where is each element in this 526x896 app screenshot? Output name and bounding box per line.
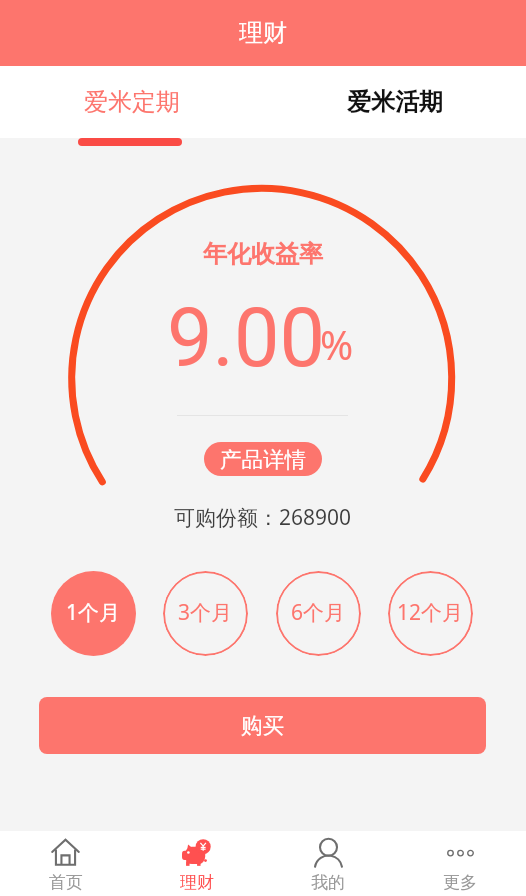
staticText: 理财 — [180, 872, 214, 893]
staticText: 6个月 — [291, 598, 346, 627]
staticText: 购买 — [241, 712, 284, 739]
staticText: 可购份额：268900 — [174, 503, 352, 532]
button[interactable]: 爱米活期 — [263, 66, 526, 138]
button[interactable]: 购买 — [39, 697, 486, 754]
button[interactable]: 我的 — [262, 831, 394, 896]
staticText: 3个月 — [178, 598, 233, 627]
staticText: 1个月 — [66, 598, 121, 627]
button[interactable]: 1个月 — [51, 571, 136, 656]
staticText: 9.00 — [167, 291, 325, 386]
staticText: 爱米定期 — [84, 87, 180, 117]
button[interactable]: 爱米定期 — [0, 66, 263, 138]
staticText: 12个月 — [397, 598, 464, 627]
button[interactable]: 首页 — [0, 831, 131, 896]
staticText: 更多 — [443, 872, 477, 893]
staticText: 产品详情 — [220, 446, 306, 473]
staticText: % — [320, 317, 354, 371]
button[interactable]: 理财 — [131, 831, 262, 896]
button[interactable]: 产品详情 — [204, 442, 322, 476]
button[interactable]: 更多 — [394, 831, 526, 896]
staticText: 爱米活期 — [347, 87, 443, 117]
staticText: 年化收益率 — [203, 239, 323, 269]
staticText: 我的 — [311, 872, 345, 893]
button[interactable]: 12个月 — [388, 571, 473, 656]
staticText: 首页 — [49, 872, 83, 893]
staticText: 理财 — [239, 18, 287, 48]
button[interactable]: 3个月 — [163, 571, 248, 656]
button[interactable]: 6个月 — [276, 571, 361, 656]
